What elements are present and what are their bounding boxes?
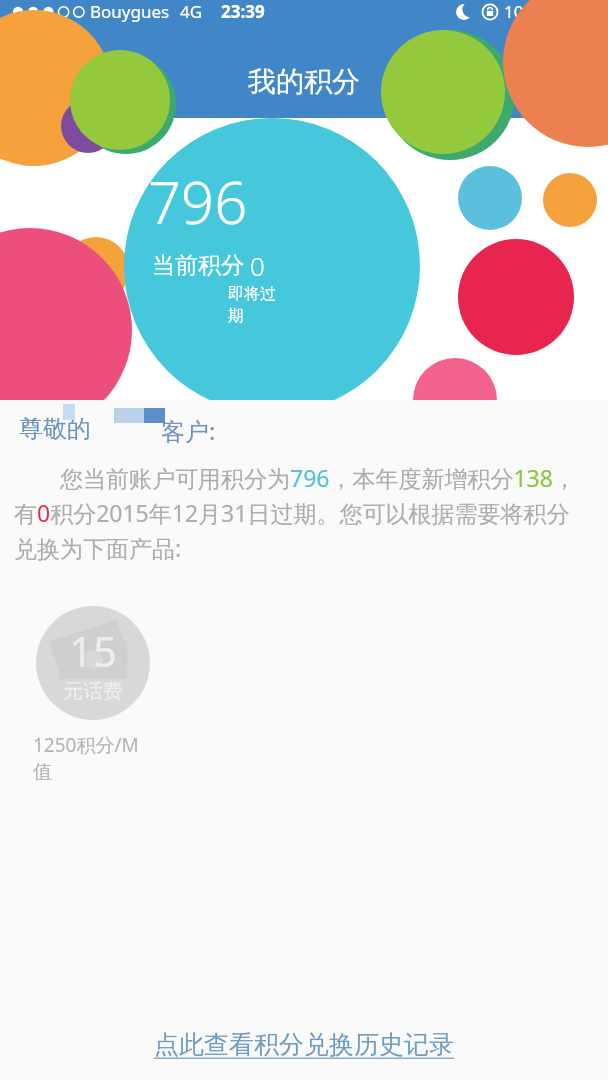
staticText: 尊敬的: [19, 414, 91, 444]
staticText: 我的积分: [248, 64, 360, 99]
staticText: 15: [69, 622, 118, 679]
staticText: 23:39: [221, 0, 265, 23]
staticText: 元话费: [63, 679, 123, 704]
staticText: 1250积分/M值: [33, 732, 153, 784]
staticText: 当前积分: [152, 251, 244, 280]
staticText: 100%: [504, 0, 548, 23]
staticText: Bouygues: [90, 0, 170, 23]
staticText: 客户:: [161, 414, 216, 447]
staticText: 4G: [180, 0, 203, 23]
staticText: 即将过期: [228, 284, 286, 326]
staticText: 796: [148, 162, 248, 241]
staticText: 点此查看积分兑换历史记录: [154, 1029, 454, 1060]
staticText: 您当前账户可用积分为796，本年度新增积分138，有0积分2015年12月31日…: [14, 462, 592, 564]
staticText: 0: [250, 248, 265, 283]
button[interactable]: 点此查看积分兑换历史记录: [0, 1008, 608, 1080]
button[interactable]: 15: [33, 606, 153, 784]
